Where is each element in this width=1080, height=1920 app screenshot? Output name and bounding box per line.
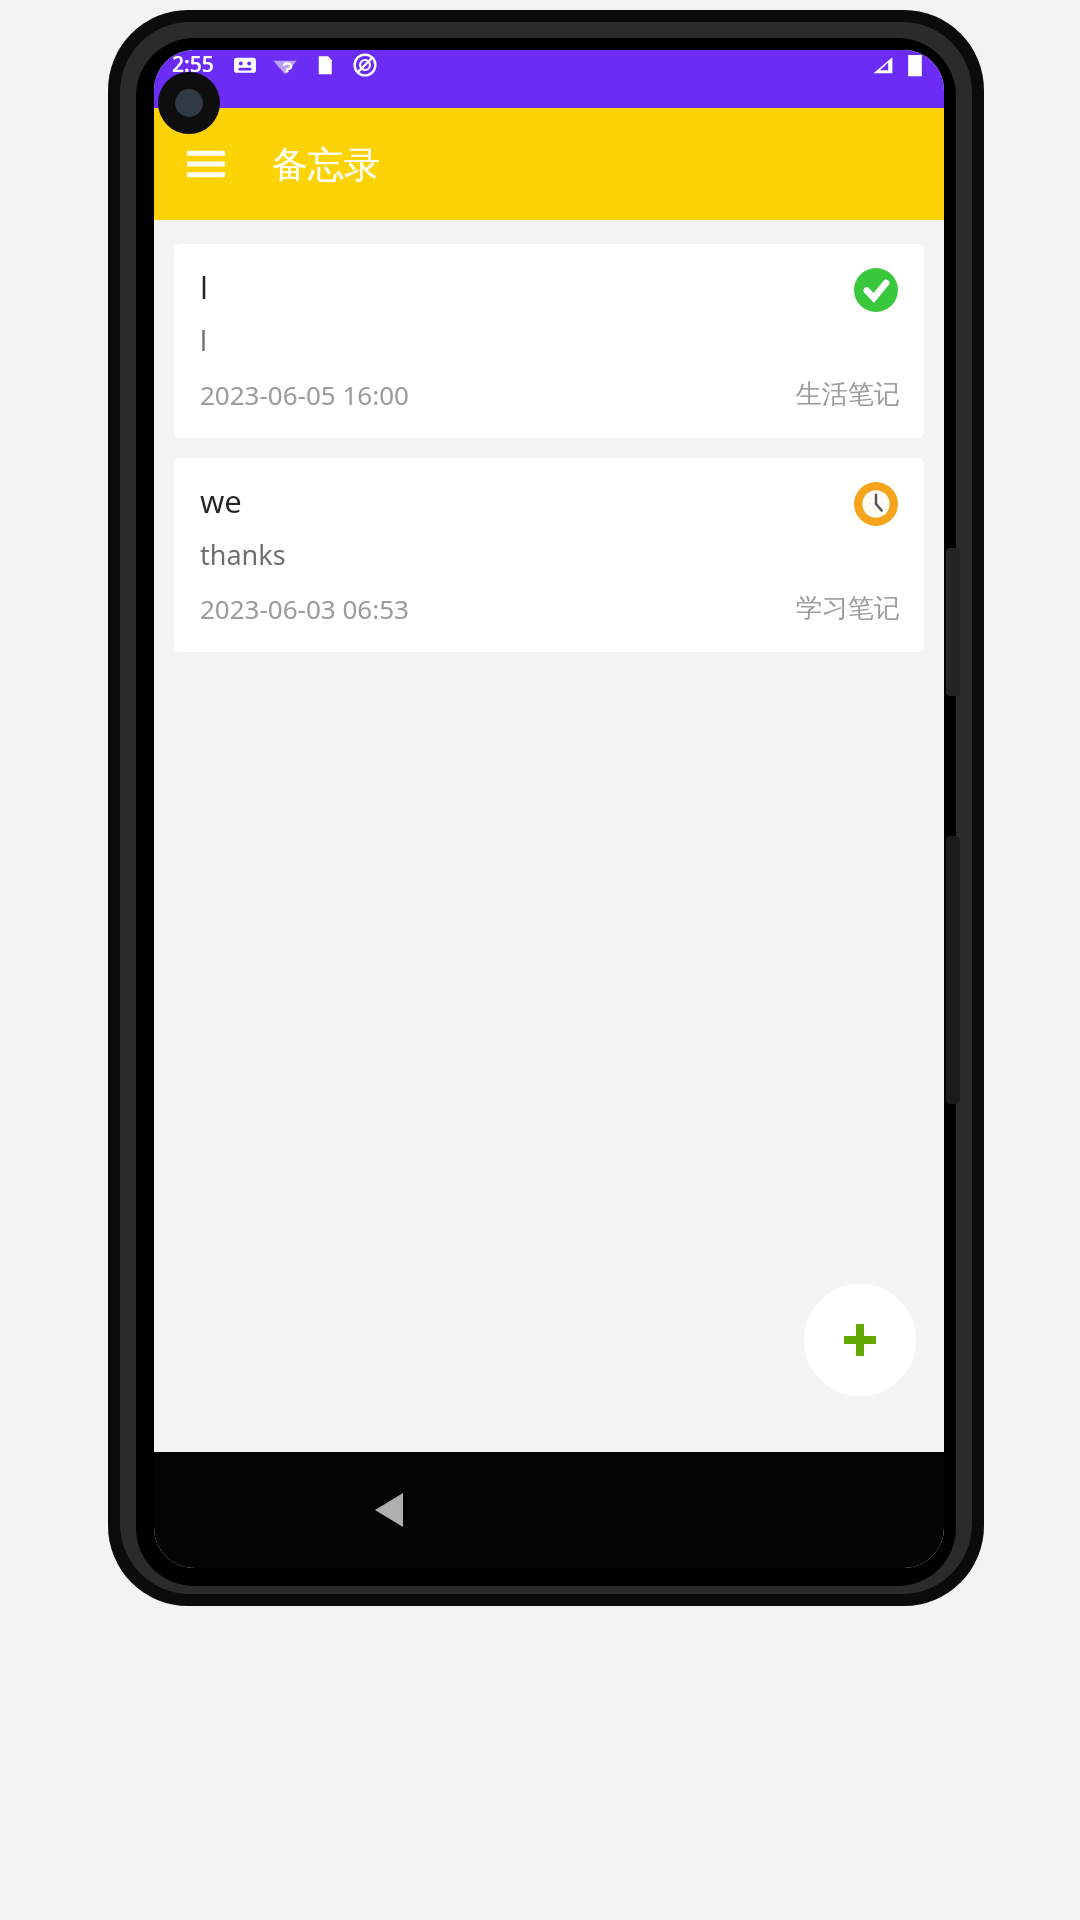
staticText: l xyxy=(200,322,207,359)
staticText: 2023-06-05 16:00 xyxy=(200,377,409,412)
button[interactable]: l xyxy=(174,244,924,438)
button[interactable]: we xyxy=(174,458,924,652)
staticText: l xyxy=(200,266,208,308)
button[interactable]: Open navigation menu xyxy=(178,136,234,192)
button[interactable]: Add note xyxy=(804,1284,916,1396)
staticText: we xyxy=(200,480,242,522)
button[interactable]: Back xyxy=(341,1462,437,1558)
staticText: 2:55 xyxy=(172,50,214,79)
staticText: 2023-06-03 06:53 xyxy=(200,591,409,626)
button[interactable]: Completed xyxy=(852,266,900,314)
staticText: 学习笔记 xyxy=(796,592,900,625)
button[interactable]: Pending xyxy=(852,480,900,528)
staticText: 生活笔记 xyxy=(796,378,900,411)
staticText: 备忘录 xyxy=(272,142,380,187)
staticText: thanks xyxy=(200,536,286,573)
